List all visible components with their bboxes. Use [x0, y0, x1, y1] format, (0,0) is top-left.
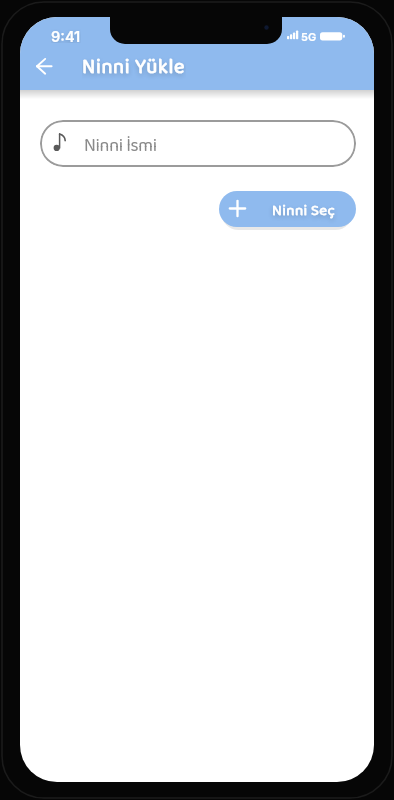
- staticText: Ninni İsmi: [84, 132, 157, 161]
- staticText: Ninni Yükle: [82, 51, 186, 81]
- button[interactable]: Ninni Seç: [219, 191, 356, 227]
- staticText: 5G: [301, 30, 317, 43]
- staticText: 9:41: [51, 28, 81, 43]
- button[interactable]: [26, 53, 63, 79]
- staticText: Ninni Seç: [272, 199, 336, 223]
- button[interactable]: Ninni İsmi: [40, 120, 356, 167]
